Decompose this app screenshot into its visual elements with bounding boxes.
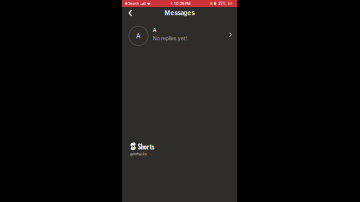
staticText: 25%	[218, 1, 226, 6]
staticText: A	[153, 27, 157, 33]
staticText: No replies yet!	[153, 35, 187, 41]
staticText: Messages	[164, 9, 194, 17]
staticText: 10:29 PM	[174, 1, 191, 6]
staticText: Shorts	[138, 141, 155, 151]
staticText: @mrhacks	[130, 152, 147, 156]
button[interactable]: A	[122, 22, 237, 50]
button[interactable]: Back	[122, 7, 137, 19]
staticText: A	[136, 32, 141, 40]
staticText: Search	[128, 1, 139, 6]
